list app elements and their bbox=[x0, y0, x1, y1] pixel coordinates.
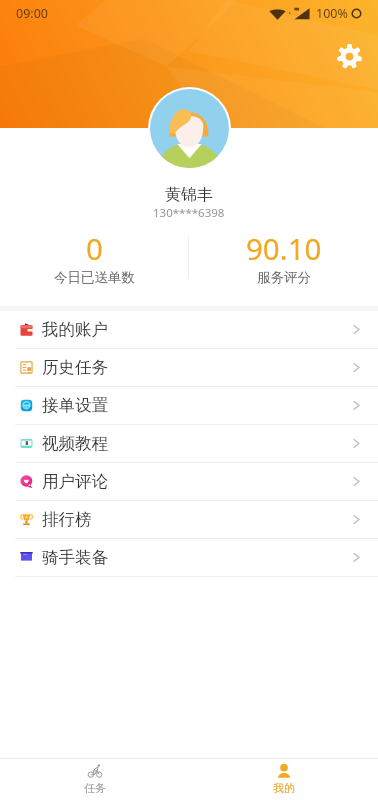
button[interactable]: 视频教程 bbox=[0, 425, 378, 462]
staticText: 90.10 bbox=[246, 228, 322, 268]
staticText: 用户评论 bbox=[42, 471, 108, 492]
staticText: 视频教程 bbox=[42, 433, 108, 454]
button[interactable]: 我的 bbox=[189, 764, 378, 795]
staticText: 0 bbox=[86, 228, 103, 268]
button[interactable]: 历史任务 bbox=[0, 349, 378, 386]
button[interactable]: 90.10 bbox=[189, 228, 378, 286]
staticText: 排行榜 bbox=[42, 509, 92, 530]
button[interactable]: 我的账户 bbox=[0, 311, 378, 348]
staticText: 服务评分 bbox=[257, 269, 311, 286]
button[interactable]: 排行榜 bbox=[0, 501, 378, 538]
button[interactable]: Settings bbox=[334, 41, 364, 71]
staticText: 黄锦丰 bbox=[165, 185, 213, 205]
staticText: 09:00 bbox=[16, 5, 48, 22]
staticText: 接单设置 bbox=[42, 395, 108, 416]
staticText: 我的账户 bbox=[42, 319, 108, 340]
staticText: 今日已送单数 bbox=[54, 269, 135, 286]
staticText: 骑手装备 bbox=[42, 547, 108, 568]
button[interactable]: 接单设置 bbox=[0, 387, 378, 424]
button[interactable]: 骑手装备 bbox=[0, 539, 378, 576]
staticText: 我的 bbox=[273, 781, 295, 795]
staticText: 历史任务 bbox=[42, 357, 108, 378]
staticText: 任务 bbox=[84, 781, 106, 795]
button[interactable]: 任务 bbox=[0, 764, 189, 795]
button[interactable]: 0 bbox=[0, 228, 188, 286]
button[interactable]: Avatar bbox=[148, 87, 231, 170]
staticText: 100% bbox=[316, 5, 348, 22]
staticText: 130****6398 bbox=[153, 205, 225, 221]
button[interactable]: 用户评论 bbox=[0, 463, 378, 500]
